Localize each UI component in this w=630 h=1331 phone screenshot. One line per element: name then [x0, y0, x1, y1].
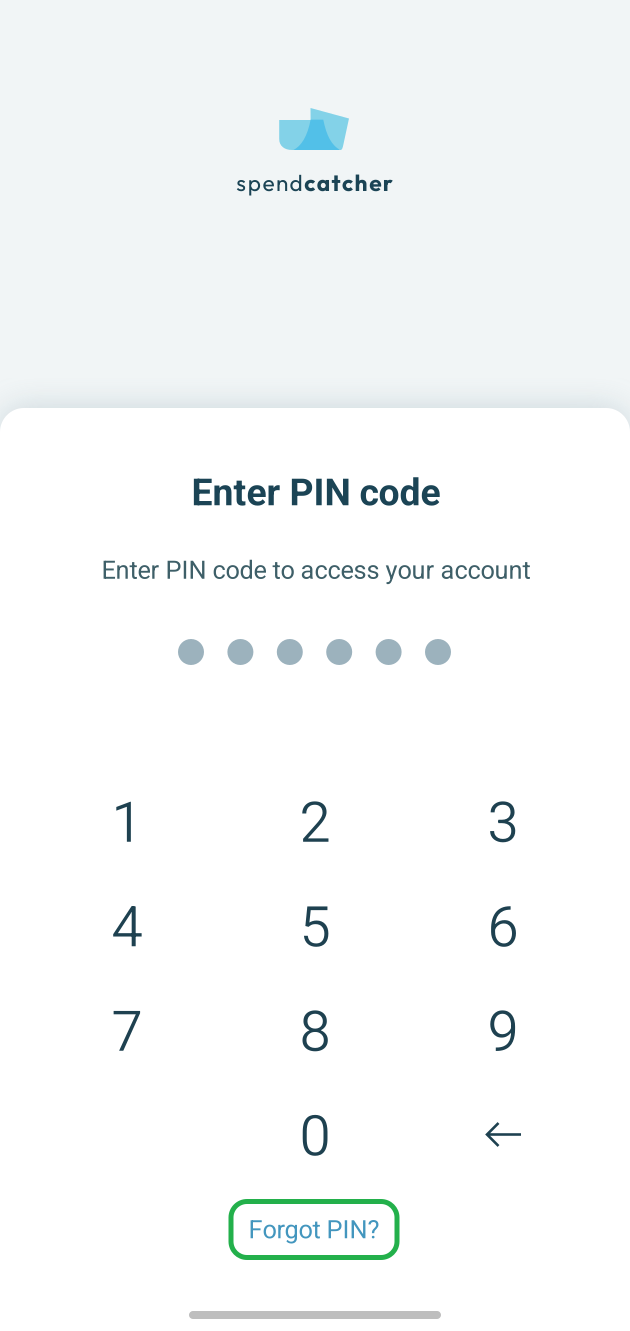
staticText: 5: [299, 894, 330, 960]
staticText: 9: [487, 999, 518, 1064]
staticText: spendcatcher: [236, 169, 393, 196]
button[interactable]: Forgot PIN?: [228, 1199, 399, 1260]
button[interactable]: 9: [409, 979, 597, 1083]
button[interactable]: Delete: [410, 1082, 598, 1186]
button[interactable]: 8: [221, 979, 409, 1083]
staticText: 6: [487, 894, 518, 960]
staticText: 7: [111, 999, 142, 1064]
button[interactable]: 2: [221, 770, 409, 874]
staticText: 4: [111, 894, 142, 960]
staticText: Enter PIN code to access your account: [101, 555, 530, 585]
button[interactable]: 6: [409, 875, 597, 979]
staticText: Forgot PIN?: [248, 1215, 379, 1244]
staticText: 3: [487, 790, 518, 855]
staticText: Enter PIN code: [191, 471, 440, 514]
staticText: 0: [299, 1103, 330, 1169]
staticText: 8: [299, 999, 330, 1064]
button[interactable]: 3: [409, 770, 597, 874]
button[interactable]: 4: [33, 875, 221, 979]
button[interactable]: 1: [33, 770, 221, 874]
staticText: 2: [299, 790, 330, 855]
button[interactable]: 0: [221, 1084, 409, 1188]
staticText: 1: [111, 790, 142, 855]
button[interactable]: 7: [33, 979, 221, 1083]
button[interactable]: 5: [221, 875, 409, 979]
